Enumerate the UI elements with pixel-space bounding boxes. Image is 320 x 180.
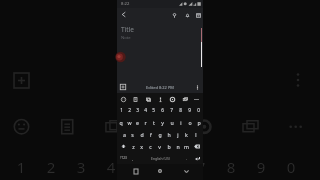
staticText: 8 [179, 107, 182, 114]
button[interactable]: 8 [176, 104, 185, 116]
button[interactable]: m [182, 140, 191, 152]
staticText: 5 [134, 157, 148, 177]
button[interactable]: w [125, 116, 133, 128]
button[interactable]: Home [154, 165, 166, 177]
staticText: 6 [164, 157, 178, 177]
button[interactable]: 4 [141, 104, 149, 116]
staticText: 4 [144, 107, 147, 114]
staticText: d [140, 131, 144, 138]
button[interactable]: d [137, 128, 146, 140]
staticText: q [119, 119, 123, 126]
staticText: 4 [104, 157, 118, 177]
staticText: 7 [194, 157, 208, 177]
button[interactable]: 7 [167, 104, 176, 116]
button[interactable]: l [191, 128, 200, 140]
staticText: t [153, 119, 155, 126]
button[interactable]: Shift [117, 140, 129, 152]
staticText: 6 [161, 107, 164, 114]
button[interactable]: o [185, 116, 194, 128]
button[interactable]: Keyboard tool 5 [167, 94, 177, 104]
button[interactable]: Keyboard tool 6 [180, 94, 190, 104]
button[interactable]: More keyboard tools [191, 94, 201, 104]
staticText: x [140, 143, 143, 150]
button[interactable]: Backspace [191, 140, 203, 152]
button[interactable]: n [173, 140, 182, 152]
staticText: v [158, 143, 161, 150]
button[interactable]: Hide keyboard [180, 165, 192, 177]
staticText: ?123 [120, 156, 127, 160]
button[interactable]: ?123 [117, 152, 129, 164]
staticText: 0 [197, 107, 200, 114]
button[interactable]: Recent apps [130, 165, 142, 177]
staticText: a [123, 131, 126, 138]
button[interactable]: 0 [194, 104, 203, 116]
staticText: u [170, 119, 174, 126]
button[interactable]: 3 [133, 104, 141, 116]
button[interactable]: More options [192, 82, 202, 92]
staticText: j [177, 131, 179, 138]
button[interactable]: , [129, 152, 137, 164]
staticText: r [144, 119, 147, 126]
button[interactable]: Pin [169, 10, 179, 20]
button[interactable]: j [173, 128, 182, 140]
button[interactable]: i [176, 116, 185, 128]
button[interactable]: z [129, 140, 137, 152]
staticText: English (US) [151, 156, 170, 161]
button[interactable]: Enter [191, 152, 203, 164]
staticText: Title [121, 25, 134, 34]
button[interactable]: c [146, 140, 155, 152]
button[interactable]: u [167, 116, 176, 128]
button[interactable]: 2 [125, 104, 133, 116]
button[interactable]: Archive [193, 10, 203, 20]
button[interactable]: t [149, 116, 158, 128]
staticText: 7 [170, 107, 173, 114]
button[interactable]: s [128, 128, 137, 140]
button[interactable]: Back [118, 9, 129, 20]
staticText: l [195, 131, 197, 138]
button[interactable]: Keyboard tool 4 [155, 94, 165, 104]
staticText: 0 [284, 157, 298, 177]
staticText: h [167, 131, 171, 138]
staticText: s [131, 131, 134, 138]
button[interactable]: g [155, 128, 164, 140]
button[interactable]: Reminder [182, 10, 192, 20]
button[interactable]: y [158, 116, 167, 128]
staticText: , [132, 156, 134, 161]
button[interactable]: e [133, 116, 141, 128]
button[interactable]: q [117, 116, 125, 128]
button[interactable]: English (US) [137, 152, 183, 164]
button[interactable]: 9 [185, 104, 194, 116]
staticText: 9 [254, 157, 268, 177]
staticText: o [188, 119, 192, 126]
staticText: c [149, 143, 152, 150]
button[interactable]: r [141, 116, 149, 128]
button[interactable]: Keyboard tool 1 [118, 94, 128, 104]
staticText: n [176, 143, 180, 150]
staticText: 1 [120, 107, 123, 114]
button[interactable]: v [155, 140, 164, 152]
button[interactable]: f [146, 128, 155, 140]
staticText: m [184, 143, 189, 150]
staticText: 2 [44, 157, 58, 177]
button[interactable]: p [194, 116, 203, 128]
button[interactable]: 6 [158, 104, 167, 116]
button[interactable]: 5 [149, 104, 158, 116]
button[interactable]: a [120, 128, 128, 140]
staticText: 5 [152, 107, 155, 114]
staticText: k [185, 131, 188, 138]
button[interactable]: Add [118, 82, 128, 92]
button[interactable]: x [137, 140, 146, 152]
staticText: z [132, 143, 135, 150]
button[interactable]: 1 [117, 104, 125, 116]
button[interactable]: k [182, 128, 191, 140]
staticText: f [150, 131, 152, 138]
staticText: e [136, 119, 139, 126]
button[interactable]: Keyboard tool 3 [143, 94, 153, 104]
staticText: 8:22 [121, 1, 130, 7]
button[interactable]: . [183, 152, 191, 164]
staticText: p [197, 119, 201, 126]
staticText: 1 [14, 157, 28, 177]
button[interactable]: Keyboard tool 2 [130, 94, 140, 104]
button[interactable]: h [164, 128, 173, 140]
button[interactable]: b [164, 140, 173, 152]
